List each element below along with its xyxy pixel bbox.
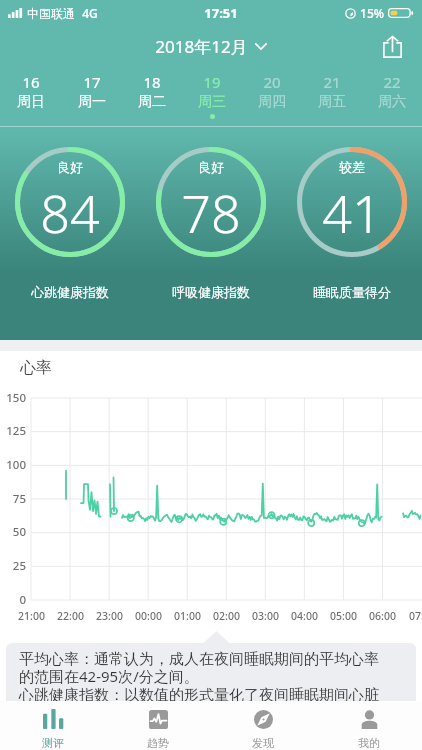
button[interactable]: 18 — [122, 67, 182, 114]
staticText: 周二 — [138, 93, 166, 111]
staticText: 22 — [383, 72, 401, 92]
staticText: 01:00 — [174, 609, 201, 623]
button[interactable]: 较差 — [281, 147, 422, 300]
staticText: 03:00 — [252, 609, 279, 623]
button[interactable]: 2018年12月 — [149, 29, 273, 64]
staticText: 周一 — [78, 93, 106, 111]
staticText: 周日 — [17, 93, 45, 111]
staticText: 较差 — [339, 159, 365, 175]
staticText: 趋势 — [147, 736, 169, 750]
staticText: 周六 — [378, 93, 406, 111]
staticText: 06:00 — [369, 609, 396, 623]
staticText: 我的 — [358, 736, 380, 750]
staticText: 20 — [263, 72, 281, 92]
button[interactable]: 21 — [302, 67, 362, 114]
staticText: 心跳健康指数 — [31, 284, 109, 300]
button[interactable]: 我的 — [316, 701, 422, 750]
button[interactable]: 测评 — [0, 701, 105, 750]
staticText: 41 — [322, 177, 382, 248]
staticText: 25 — [0, 558, 26, 574]
staticText: 21 — [323, 72, 341, 92]
staticText: 19 — [203, 72, 221, 92]
staticText: 良好 — [198, 159, 224, 175]
staticText: 周三 — [198, 93, 226, 111]
button[interactable]: 趋势 — [105, 701, 210, 750]
staticText: 0 — [0, 592, 26, 608]
staticText: 17:51 — [204, 4, 238, 22]
staticText: 125 — [0, 423, 26, 439]
staticText: 良好 — [57, 159, 83, 175]
staticText: 00:00 — [135, 609, 162, 623]
staticText: 测评 — [42, 736, 64, 750]
staticText: 周四 — [258, 93, 286, 111]
staticText: 23:00 — [96, 609, 123, 623]
staticText: 100 — [0, 457, 26, 473]
staticText: 22:00 — [57, 609, 84, 623]
staticText: 平均心率：通常认为，成人在夜间睡眠期间的平均心率 的范围在42-95次/分之间。… — [19, 650, 379, 704]
button[interactable]: 17 — [61, 67, 122, 114]
button[interactable]: 良好 — [0, 147, 140, 300]
staticText: 21:00 — [18, 609, 45, 623]
button[interactable]: 20 — [242, 67, 302, 114]
staticText: 发现 — [252, 736, 274, 750]
staticText: 呼吸健康指数 — [172, 284, 250, 300]
button[interactable]: 16 — [0, 67, 61, 114]
staticText: 04:00 — [291, 609, 318, 623]
staticText: 17 — [83, 72, 101, 92]
button[interactable]: 22 — [362, 67, 422, 114]
staticText: 05:00 — [330, 609, 357, 623]
staticText: 75 — [0, 491, 26, 507]
staticText: 心率 — [20, 358, 52, 378]
staticText: 周五 — [318, 93, 346, 111]
staticText: 02:00 — [213, 609, 240, 623]
staticText: 16 — [22, 72, 40, 92]
button[interactable]: 19 — [182, 67, 242, 119]
staticText: 50 — [0, 524, 26, 540]
button[interactable]: 发现 — [210, 701, 316, 750]
button[interactable]: 良好 — [140, 147, 281, 300]
staticText: 84 — [40, 177, 100, 248]
staticText: 07:00 — [409, 609, 422, 623]
staticText: 150 — [0, 390, 26, 406]
staticText: 15% — [360, 5, 384, 21]
staticText: 18 — [143, 72, 161, 92]
staticText: 78 — [181, 177, 241, 248]
staticText: 4G — [82, 5, 98, 21]
button[interactable]: Share — [374, 29, 410, 65]
staticText: 中国联通 — [27, 6, 75, 21]
staticText: 睡眠质量得分 — [313, 284, 391, 300]
staticText: 2018年12月 — [155, 35, 248, 58]
